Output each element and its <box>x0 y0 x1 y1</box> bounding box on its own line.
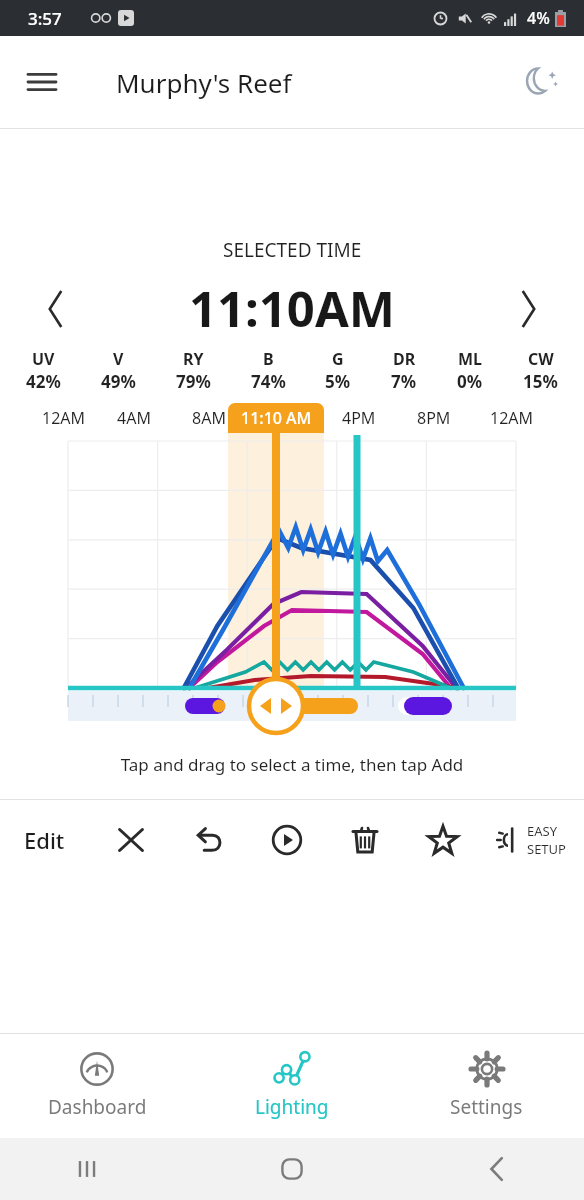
button[interactable]: Menu <box>14 54 70 110</box>
button[interactable]: EASY <box>491 818 570 862</box>
staticText: B <box>263 348 274 370</box>
button[interactable]: Previous <box>30 283 82 335</box>
staticText: 42% <box>26 370 61 393</box>
staticText: 8AM <box>192 407 226 429</box>
button[interactable]: Delete <box>345 820 385 860</box>
staticText: 0% <box>457 370 483 393</box>
button[interactable]: Lighting <box>194 1034 389 1138</box>
staticText: 15% <box>523 370 558 393</box>
staticText: 12AM <box>490 407 534 429</box>
staticText: UV <box>32 348 55 370</box>
staticText: 4AM <box>117 407 151 429</box>
staticText: 8PM <box>417 407 451 429</box>
button[interactable]: Back <box>470 1142 524 1196</box>
button[interactable]: Settings <box>389 1034 584 1138</box>
staticText: 3:57 <box>28 7 62 30</box>
staticText: 4% <box>527 7 550 29</box>
staticText: 12AM <box>42 407 86 429</box>
staticText: 79% <box>176 370 211 393</box>
staticText: Lighting <box>255 1094 329 1120</box>
button[interactable]: Night mode <box>514 54 570 110</box>
button[interactable]: 11:10 AM <box>228 403 324 433</box>
button[interactable]: Home <box>265 1142 319 1196</box>
staticText: Murphy's Reef <box>116 65 292 100</box>
button[interactable]: Dashboard <box>0 1034 194 1138</box>
staticText: 11:10AM <box>189 275 395 342</box>
staticText: Settings <box>450 1094 523 1120</box>
button[interactable]: Close <box>111 820 151 860</box>
button[interactable]: Undo <box>189 820 229 860</box>
staticText: 49% <box>101 370 136 393</box>
button[interactable]: Play <box>267 820 307 860</box>
staticText: V <box>113 348 124 370</box>
staticText: SETUP <box>527 840 566 858</box>
staticText: RY <box>183 348 204 370</box>
staticText: 7% <box>391 370 417 393</box>
staticText: 5% <box>325 370 351 393</box>
button[interactable]: Favorite <box>423 820 463 860</box>
staticText: Edit <box>24 825 65 855</box>
staticText: 74% <box>251 370 286 393</box>
staticText: 4PM <box>342 407 376 429</box>
staticText: DR <box>393 348 416 370</box>
button[interactable]: Recents <box>60 1142 114 1196</box>
staticText: SELECTED TIME <box>223 237 362 263</box>
staticText: ML <box>458 348 483 370</box>
staticText: G <box>332 348 344 370</box>
button[interactable]: Edit <box>20 821 69 859</box>
staticText: Tap and drag to select a time, then tap … <box>0 753 584 776</box>
staticText: Dashboard <box>48 1094 147 1120</box>
staticText: CW <box>528 348 554 370</box>
staticText: 11:10 AM <box>241 407 312 429</box>
staticText: EASY <box>527 822 558 840</box>
button[interactable]: Next <box>502 283 554 335</box>
